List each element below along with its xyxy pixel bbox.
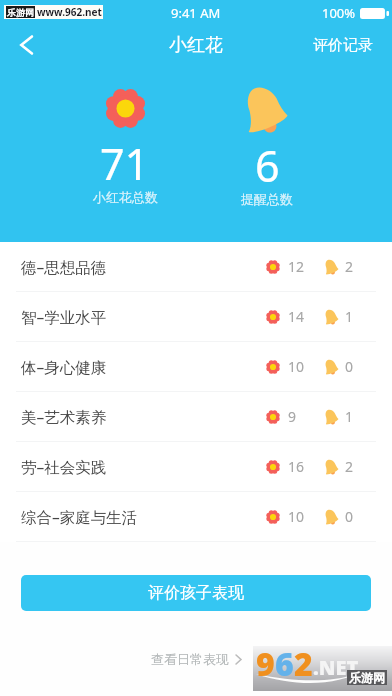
staticText: .NET [313,654,359,681]
staticText: 71 [100,134,150,193]
staticText: 14 [288,307,305,326]
staticText: 10 [288,507,305,526]
staticText: www.962.net [37,5,102,19]
staticText: 劳–社会实践 [21,456,107,477]
staticText: 提醒总数 [241,191,293,207]
staticText: 体–身心健康 [21,356,107,377]
staticText: 小红花 [169,34,223,57]
staticText: 评价孩子表现 [148,583,244,603]
staticText: 2 [345,257,354,276]
staticText: 9 [288,407,297,426]
button[interactable]: 智–学业水平 [0,292,392,342]
staticText: 9 [256,642,275,686]
staticText: 乐游网 [349,670,385,685]
staticText: 查看日常表现 [151,651,229,667]
staticText: 12 [288,257,305,276]
staticText: 2 [294,642,313,686]
button[interactable]: 劳–社会实践 [0,442,392,492]
button[interactable]: 体–身心健康 [0,342,392,392]
staticText: 9:41 AM [171,4,221,22]
button[interactable]: 德–思想品德 [0,242,392,292]
staticText: 德–思想品德 [21,256,107,277]
button[interactable]: 美–艺术素养 [0,392,392,442]
staticText: 美–艺术素养 [21,406,107,427]
staticText: 智–学业水平 [21,306,107,327]
button[interactable]: Back [0,25,52,65]
staticText: 2 [345,457,354,476]
staticText: 综合–家庭与生活 [21,506,138,527]
staticText: 16 [288,457,305,476]
staticText: 1 [345,407,354,426]
button[interactable]: 查看日常表现 [143,643,250,675]
button[interactable]: 评价孩子表现 [21,575,371,611]
staticText: 6 [255,136,280,195]
staticText: 乐游网 [7,7,34,18]
staticText: 0 [345,357,354,376]
staticText: 小红花总数 [93,189,158,205]
staticText: 0 [345,507,354,526]
staticText: 100% [322,4,356,22]
staticText: 6 [275,642,294,686]
staticText: 10 [288,357,305,376]
button[interactable]: 评价记录 [301,25,392,65]
staticText: 评价记录 [313,36,373,55]
button[interactable]: 综合–家庭与生活 [0,492,392,542]
staticText: 1 [345,307,354,326]
